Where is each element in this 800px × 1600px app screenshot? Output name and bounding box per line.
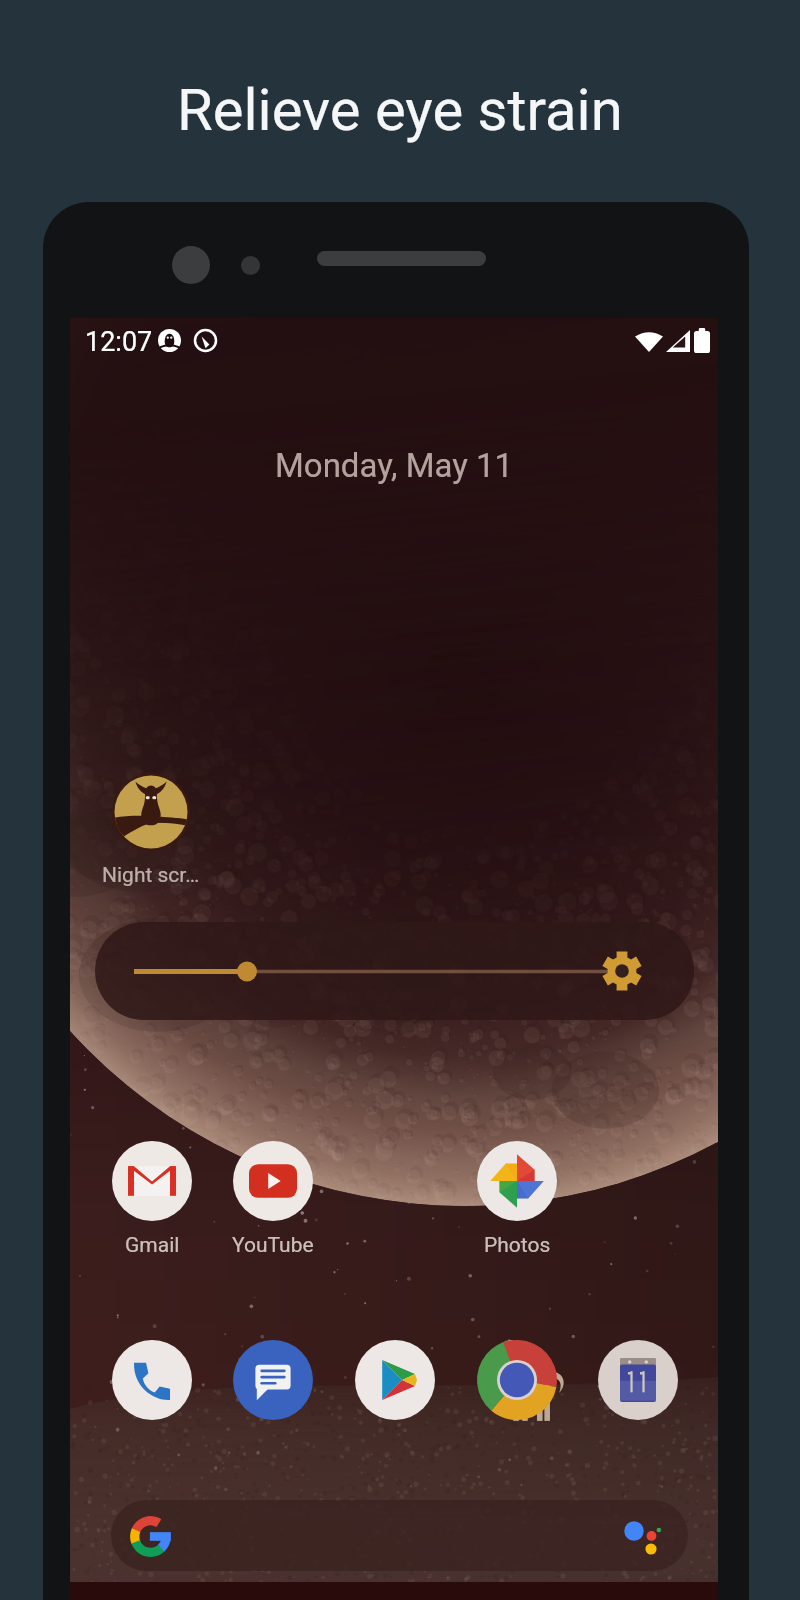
button[interactable]: Phone (112, 1340, 192, 1420)
staticText: 12:07 (85, 326, 153, 358)
button[interactable]: Photos (456, 1141, 578, 1258)
staticText: Monday, May 11 (275, 446, 514, 485)
button[interactable]: Settings (600, 949, 644, 993)
staticText: Gmail (125, 1233, 180, 1258)
button[interactable]: YouTube (212, 1141, 334, 1258)
button[interactable]: Search (111, 1500, 688, 1571)
button[interactable]: Calendar (598, 1340, 678, 1420)
button[interactable]: Settings (95, 922, 694, 1020)
button[interactable]: Messages (233, 1340, 313, 1420)
staticText: Relieve eye strain (177, 76, 623, 144)
staticText: Photos (484, 1233, 551, 1258)
button[interactable]: Chrome (477, 1340, 557, 1420)
button[interactable]: Play Store (355, 1340, 435, 1420)
button[interactable]: Night scr… (90, 773, 212, 888)
button[interactable]: Gmail (91, 1141, 213, 1258)
staticText: Night scr… (102, 863, 200, 888)
staticText: YouTube (232, 1233, 314, 1258)
